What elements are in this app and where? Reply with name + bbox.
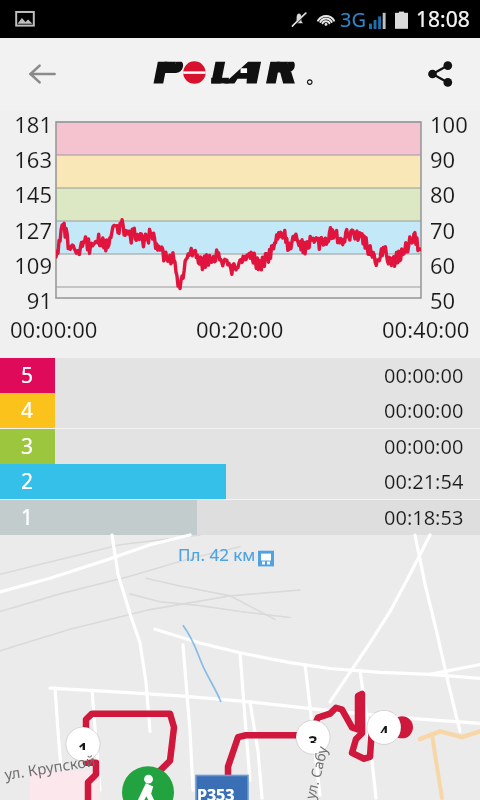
staticText: 60 <box>430 250 456 280</box>
button[interactable]: 2 <box>0 464 480 499</box>
staticText: 5 <box>21 361 34 390</box>
staticText: 4 <box>379 721 389 733</box>
staticText: 163 <box>0 144 52 174</box>
staticText: 1 <box>21 503 34 532</box>
button[interactable]: Back <box>18 50 66 98</box>
staticText: ул. Крупской <box>3 750 97 784</box>
staticText: 50 <box>430 285 456 315</box>
staticText: 00:00:00 <box>10 314 98 344</box>
staticText: P353 <box>197 784 235 800</box>
staticText: 109 <box>0 250 52 280</box>
staticText: 00:00:00 <box>384 433 464 460</box>
staticText: 70 <box>430 215 456 245</box>
staticText: 00:40:00 <box>382 314 470 344</box>
button[interactable]: Share <box>416 50 464 98</box>
staticText: 4 <box>21 396 34 425</box>
staticText: 3 <box>21 432 34 461</box>
button[interactable]: Route map <box>0 535 480 800</box>
button[interactable]: 1 <box>0 500 480 535</box>
staticText: 00:21:54 <box>384 468 464 495</box>
staticText: 00:00:00 <box>384 362 464 389</box>
button[interactable]: 4 <box>0 393 480 428</box>
staticText: 3G <box>340 6 366 33</box>
button[interactable]: 5 <box>0 358 480 393</box>
staticText: Пл. 42 км <box>178 543 256 566</box>
staticText: 127 <box>0 215 52 245</box>
staticText: 1 <box>78 738 88 750</box>
staticText: 3 <box>308 731 318 743</box>
staticText: 91 <box>0 285 52 315</box>
staticText: 100 <box>430 109 468 139</box>
staticText: ул. Сабу <box>300 744 332 800</box>
staticText: 145 <box>0 179 52 209</box>
staticText: 00:00:00 <box>384 397 464 424</box>
button[interactable]: 3 <box>0 429 480 464</box>
staticText: 80 <box>430 179 456 209</box>
staticText: 181 <box>0 109 52 139</box>
staticText: 18:08 <box>416 5 470 34</box>
staticText: 90 <box>430 144 456 174</box>
staticText: 2 <box>21 467 34 496</box>
staticText: 00:20:00 <box>196 314 284 344</box>
staticText: 00:18:53 <box>384 504 464 531</box>
